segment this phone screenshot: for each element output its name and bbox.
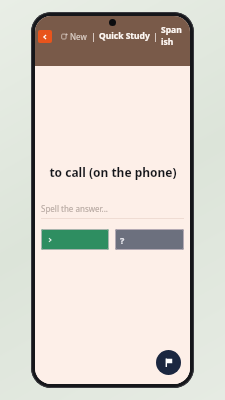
button[interactable]: Spanish bbox=[161, 24, 184, 48]
staticText: New bbox=[70, 31, 87, 42]
button[interactable]: New bbox=[60, 31, 88, 42]
button[interactable]: Flag card bbox=[156, 350, 181, 375]
button[interactable]: Hint bbox=[115, 229, 184, 250]
button[interactable]: Spell the answer... bbox=[41, 203, 184, 219]
staticText: | bbox=[153, 30, 158, 42]
button[interactable]: Quick Study bbox=[99, 30, 150, 42]
staticText: ? bbox=[120, 234, 125, 246]
staticText: | bbox=[91, 30, 96, 42]
staticText: to call (on the phone) bbox=[49, 164, 177, 180]
staticText: Spell the answer... bbox=[41, 203, 108, 214]
button[interactable]: Submit answer bbox=[41, 229, 109, 250]
button[interactable]: Back bbox=[38, 30, 52, 43]
